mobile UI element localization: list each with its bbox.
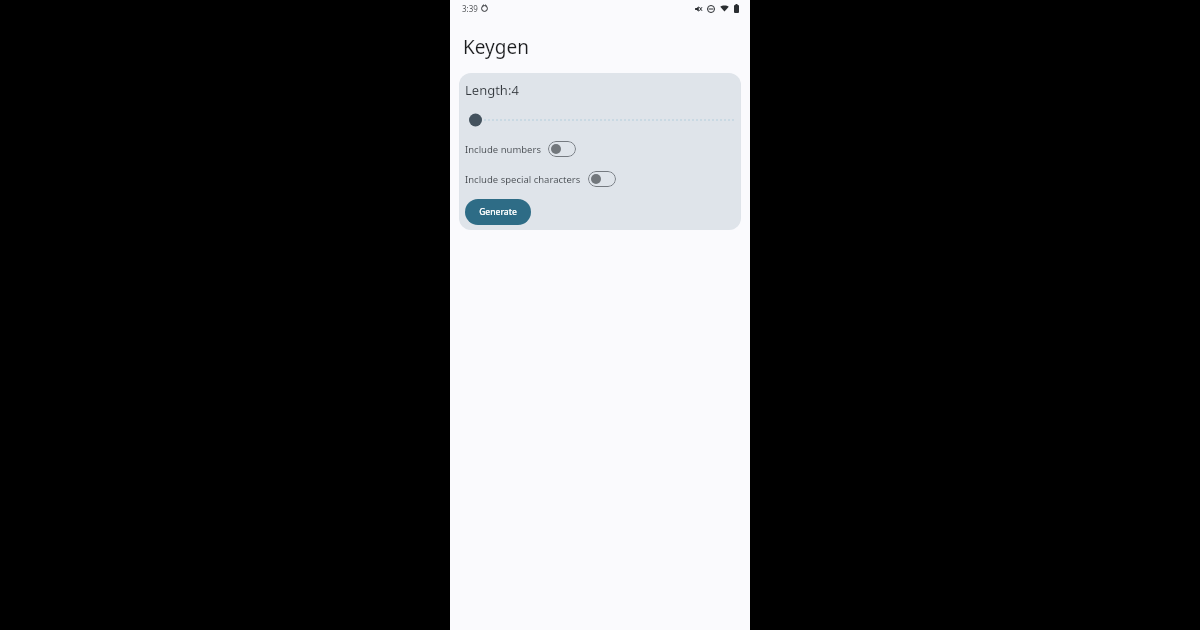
button[interactable]: Generate <box>465 199 531 225</box>
staticText: Generate <box>479 206 517 218</box>
staticText: Include special characters <box>465 173 581 186</box>
button[interactable]: Include numbers <box>465 140 576 158</box>
button[interactable] <box>465 112 735 128</box>
staticText: Keygen <box>463 34 529 60</box>
button[interactable]: Include special characters <box>465 170 616 188</box>
staticText: Include numbers <box>465 143 541 156</box>
staticText: Length:4 <box>465 81 519 99</box>
staticText: 3:39 <box>462 3 478 14</box>
